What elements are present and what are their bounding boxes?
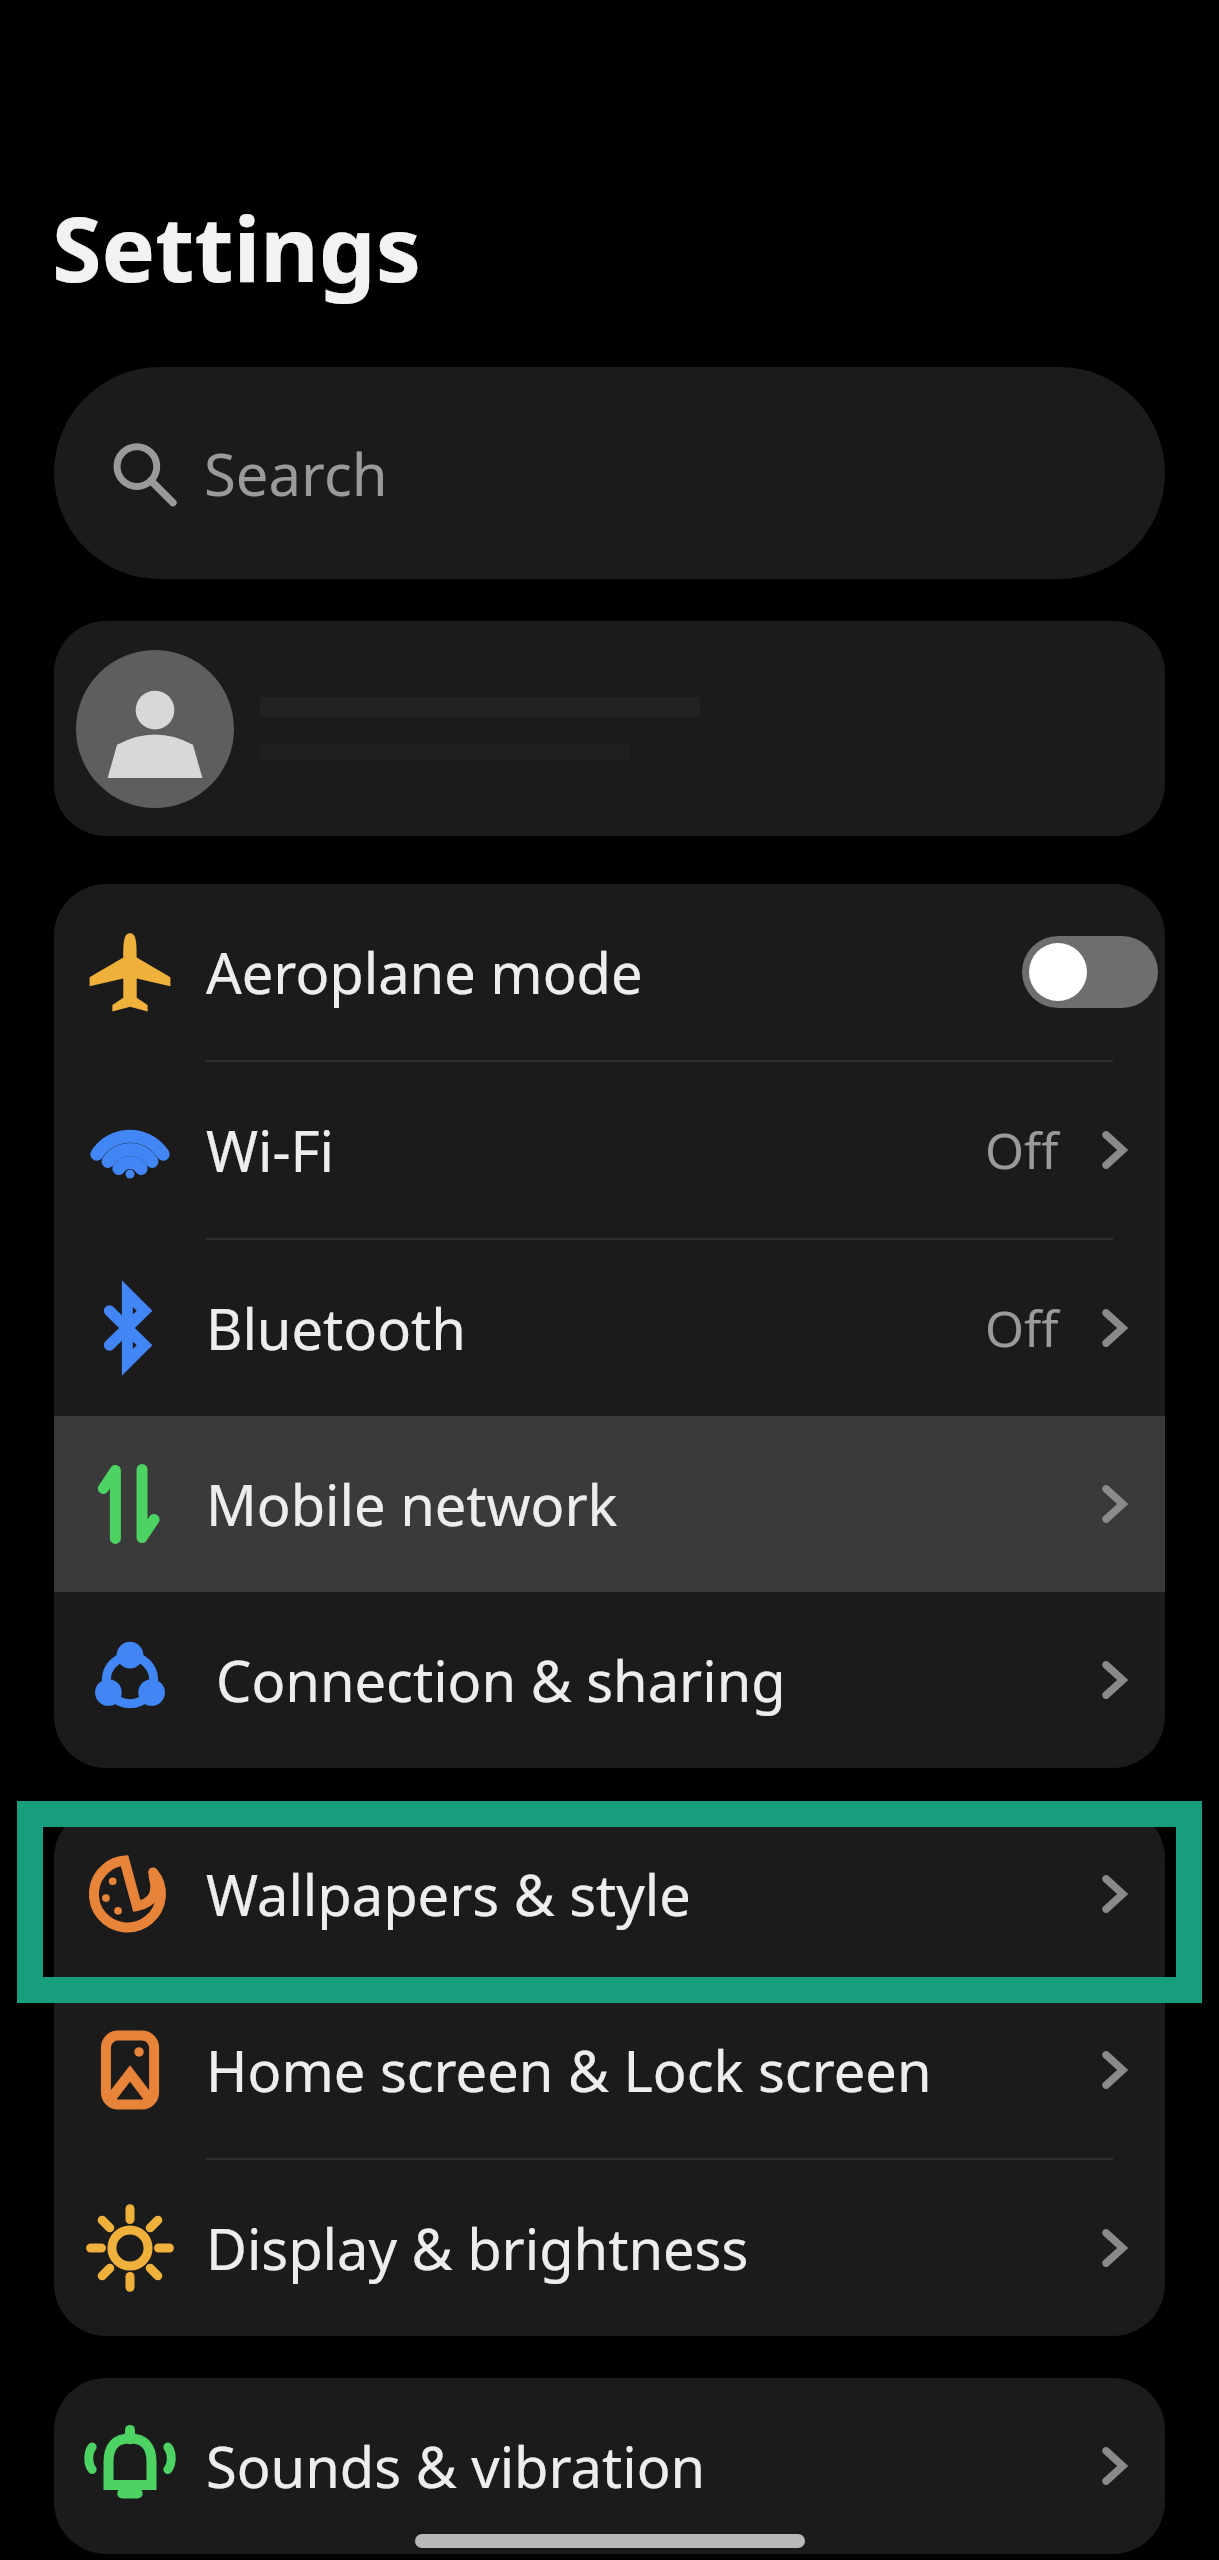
button[interactable]: Wi-Fi — [54, 1062, 1165, 1238]
button[interactable]: Sounds & vibration — [54, 2378, 1165, 2554]
button[interactable]: Mobile network — [54, 1416, 1165, 1592]
other: Open — [1092, 2042, 1148, 2098]
staticText: Home screen & Lock screen — [206, 2032, 1075, 2108]
button[interactable]: Connection & sharing — [54, 1592, 1165, 1768]
other: Open — [1092, 1122, 1148, 1178]
other: Open — [1092, 2438, 1148, 2494]
button[interactable] — [54, 621, 1165, 836]
other: Open — [1092, 1866, 1148, 1922]
button[interactable]: Wallpapers & style — [54, 1806, 1165, 1982]
staticText: Wallpapers & style — [206, 1856, 1075, 1932]
staticText: Display & brightness — [206, 2210, 1075, 2286]
staticText: Connection & sharing — [216, 1642, 1075, 1718]
other: Open — [1092, 1652, 1148, 1708]
button[interactable]: Display & brightness — [54, 2160, 1165, 2336]
other: Open — [1092, 1300, 1148, 1356]
staticText: Mobile network — [206, 1466, 1075, 1542]
staticText: Off — [985, 1116, 1059, 1184]
staticText: Settings — [52, 186, 421, 309]
staticText: Bluetooth — [206, 1290, 985, 1366]
button[interactable]: Aeroplane mode switch — [1022, 936, 1158, 1008]
other: Open — [1092, 2220, 1148, 2276]
other: Open — [1092, 1476, 1148, 1532]
staticText: Wi-Fi — [206, 1112, 985, 1188]
button[interactable]: Aeroplane mode — [54, 884, 1165, 1060]
button[interactable]: Search — [54, 367, 1165, 579]
staticText: Aeroplane mode — [206, 934, 1015, 1010]
button[interactable]: Bluetooth — [54, 1240, 1165, 1416]
staticText: Sounds & vibration — [206, 2428, 1075, 2504]
staticText: Off — [985, 1294, 1059, 1362]
staticText: Search — [204, 434, 388, 513]
button[interactable]: Home screen & Lock screen — [54, 1982, 1165, 2158]
